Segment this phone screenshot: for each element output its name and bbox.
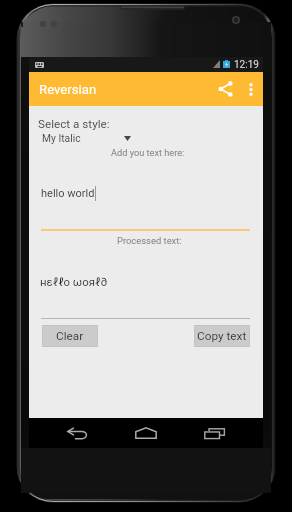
staticText: 12:19: [234, 59, 259, 71]
button[interactable]: Home: [118, 418, 174, 448]
staticText: Processed text:: [117, 235, 182, 246]
staticText: Reversian: [39, 82, 97, 97]
button[interactable]: Copy text: [194, 325, 250, 347]
staticText: Copy text: [197, 329, 247, 343]
button[interactable]: Back: [49, 418, 105, 448]
staticText: hello world: [41, 187, 95, 200]
button[interactable]: Clear: [42, 325, 98, 347]
staticText: Select a style:: [38, 117, 110, 131]
staticText: My Italic: [42, 132, 81, 144]
staticText: ʜɛℓℓo ωoяℓ∂: [40, 275, 107, 288]
staticText: Add you text here:: [111, 147, 185, 158]
staticText: Clear: [56, 329, 84, 343]
button[interactable]: Share: [210, 72, 241, 106]
button[interactable]: Recent apps: [186, 418, 242, 448]
button[interactable]: More options: [238, 72, 264, 106]
button[interactable]: My Italic: [42, 130, 131, 146]
